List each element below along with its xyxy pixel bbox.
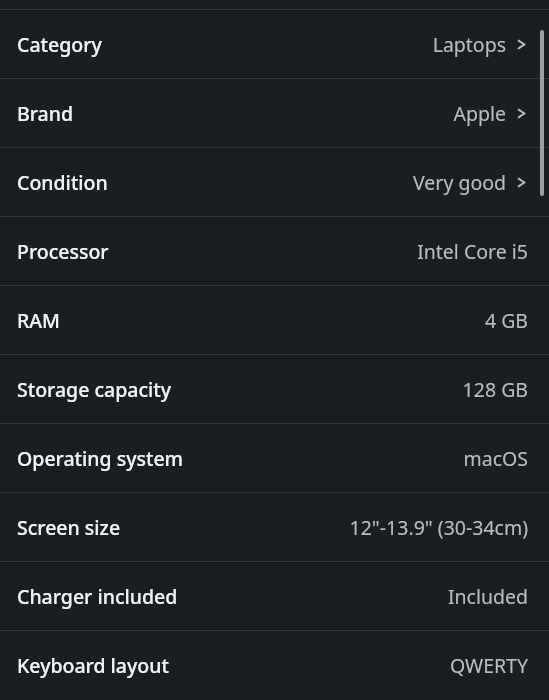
button[interactable]: Condition — [0, 148, 549, 216]
staticText: RAM — [17, 307, 60, 334]
other: Open Category — [515, 38, 528, 51]
button[interactable]: Processor — [0, 217, 549, 285]
staticText: 128 GB — [462, 376, 528, 403]
staticText: Very good — [413, 169, 506, 196]
staticText: Operating system — [17, 445, 184, 472]
staticText: Charger included — [17, 583, 178, 610]
button[interactable]: Storage capacity — [0, 355, 549, 423]
button[interactable]: Brand — [0, 79, 549, 147]
staticText: Intel Core i5 — [417, 238, 528, 265]
staticText: Storage capacity — [17, 376, 172, 403]
staticText: Laptops — [432, 31, 506, 58]
button[interactable]: RAM — [0, 286, 549, 354]
staticText: Processor — [17, 238, 109, 265]
button[interactable]: Operating system — [0, 424, 549, 492]
staticText: Condition — [17, 169, 108, 196]
other: Open Brand — [515, 107, 528, 120]
staticText: QWERTY — [449, 652, 528, 679]
other: Open Condition — [515, 176, 528, 189]
button[interactable]: Keyboard layout — [0, 631, 549, 699]
button[interactable]: Screen size — [0, 493, 549, 561]
staticText: Brand — [17, 100, 74, 127]
staticText: Apple — [453, 100, 506, 127]
staticText: Keyboard layout — [17, 652, 169, 679]
button[interactable]: Category — [0, 10, 549, 78]
staticText: 4 GB — [484, 307, 528, 334]
staticText: macOS — [463, 445, 528, 472]
staticText: 12"-13.9" (30-34cm) — [349, 514, 528, 541]
staticText: Category — [17, 31, 102, 58]
button[interactable]: Charger included — [0, 562, 549, 630]
staticText: Screen size — [17, 514, 121, 541]
staticText: Included — [447, 583, 528, 610]
